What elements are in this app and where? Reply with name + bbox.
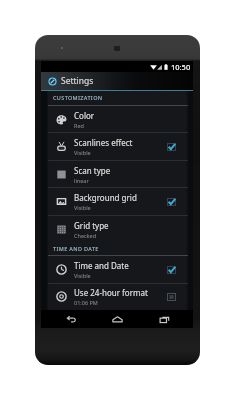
button[interactable]: Settings (41, 72, 193, 90)
staticText: CUSTOMIZATION (53, 94, 103, 101)
staticText: Time and Date (74, 260, 129, 271)
button[interactable]: Scanlines effect (41, 133, 193, 160)
button[interactable]: Grid type (41, 216, 193, 242)
staticText: 10:50 (171, 62, 191, 72)
staticText: Settings (61, 75, 94, 87)
staticText: Visible (74, 149, 91, 156)
staticText: linear (74, 177, 89, 184)
button[interactable]: Home (100, 310, 134, 328)
staticText: Red (74, 122, 84, 129)
staticText: 01:06 PM (74, 299, 98, 306)
button[interactable]: Use 24-hour format (41, 284, 193, 309)
button[interactable]: Color (41, 106, 193, 132)
staticText: Color (74, 110, 95, 121)
staticText: Visible (74, 204, 91, 211)
staticText: Visible (74, 272, 91, 279)
staticText: Background grid (74, 192, 137, 203)
button[interactable]: Scan type (41, 161, 193, 187)
button[interactable]: Time and Date (41, 256, 193, 283)
button[interactable]: Recent apps (147, 310, 181, 328)
staticText: Scan type (74, 165, 111, 176)
staticText: TIME AND DATE (53, 245, 99, 252)
staticText: Grid type (74, 220, 109, 231)
staticText: Checked (74, 232, 97, 239)
staticText: Scanlines effect (74, 137, 133, 148)
button[interactable]: Back (54, 310, 88, 328)
staticText: Use 24-hour format (74, 287, 148, 298)
button[interactable]: Background grid (41, 188, 193, 215)
